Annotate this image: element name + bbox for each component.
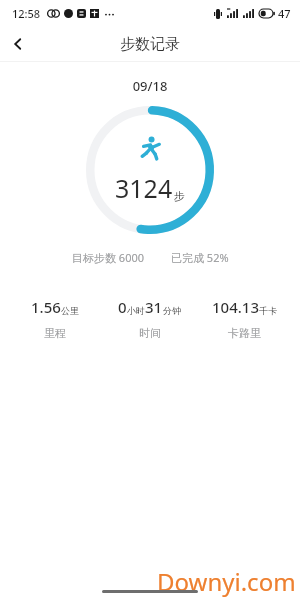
- staticText: 公里: [61, 305, 79, 316]
- staticText: 47: [278, 6, 291, 21]
- staticText: 104.13: [212, 297, 259, 317]
- staticText: 千卡: [259, 305, 277, 316]
- button[interactable]: 0: [102, 297, 197, 340]
- staticText: 目标步数 6000: [72, 250, 145, 265]
- staticText: 步: [174, 189, 185, 203]
- staticText: 里程: [44, 326, 66, 340]
- staticText: 3124: [115, 171, 173, 205]
- staticText: Downyi.com: [157, 565, 296, 598]
- staticText: 09/18: [0, 77, 300, 95]
- staticText: 31: [145, 297, 163, 317]
- button[interactable]: 1.56: [8, 297, 102, 340]
- button[interactable]: 104.13: [197, 297, 292, 340]
- staticText: 12:58: [12, 6, 41, 21]
- staticText: 已完成 52%: [171, 250, 229, 265]
- staticText: 步数记录: [120, 35, 180, 54]
- button[interactable]: Back: [0, 26, 36, 62]
- staticText: 时间: [139, 326, 161, 340]
- staticText: 卡路里: [228, 326, 261, 340]
- staticText: 分钟: [163, 305, 181, 316]
- staticText: 1.56: [31, 297, 61, 317]
- staticText: 小时: [127, 305, 145, 316]
- staticText: 0: [118, 297, 127, 317]
